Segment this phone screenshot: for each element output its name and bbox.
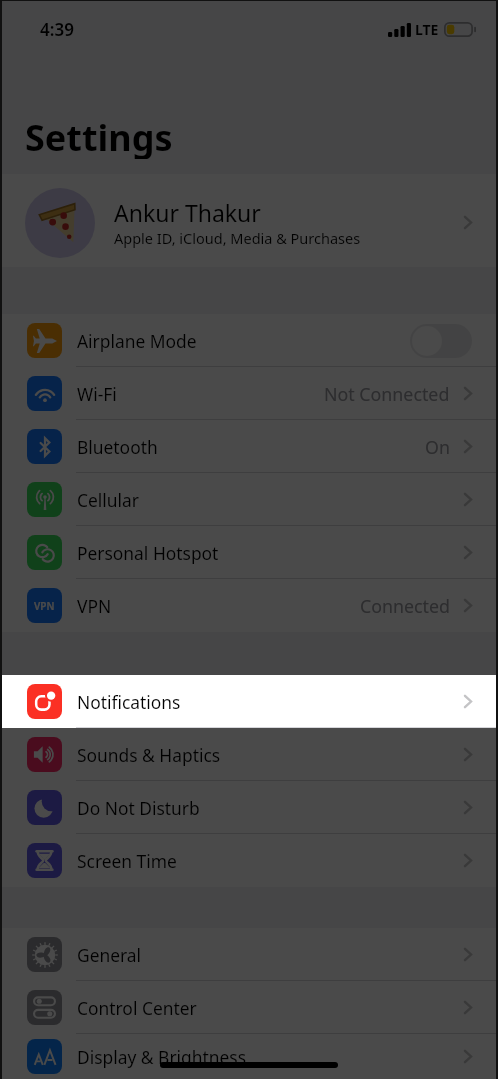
staticText: General	[77, 943, 464, 967]
staticText: LTE	[415, 20, 439, 39]
staticText: Not Connected	[324, 382, 450, 406]
staticText: Connected	[360, 594, 450, 618]
staticText: Control Center	[77, 996, 464, 1020]
staticText: On	[425, 435, 450, 459]
button[interactable]: Notifications	[2, 675, 496, 728]
button[interactable]: Personal Hotspot	[2, 526, 496, 579]
button[interactable]: Wi-Fi	[2, 367, 496, 420]
staticText: VPN	[77, 594, 360, 618]
button[interactable]: General	[2, 928, 496, 981]
staticText: Ankur Thakur	[114, 197, 261, 228]
staticText: Sounds & Haptics	[77, 743, 464, 767]
button[interactable]: Bluetooth	[2, 420, 496, 473]
button[interactable]: Do Not Disturb	[2, 781, 496, 834]
button[interactable]: Ankur Thakur	[2, 174, 496, 267]
button[interactable]: Sounds & Haptics	[2, 728, 496, 781]
button[interactable]: Display & Brightness	[2, 1034, 496, 1079]
staticText: Personal Hotspot	[77, 541, 464, 565]
staticText: Bluetooth	[77, 435, 425, 459]
button[interactable]: Control Center	[2, 981, 496, 1034]
staticText: Cellular	[77, 488, 464, 512]
button[interactable]: Airplane Mode	[2, 314, 496, 367]
staticText: Do Not Disturb	[77, 796, 464, 820]
button[interactable]: Cellular	[2, 473, 496, 526]
staticText: Wi-Fi	[77, 382, 324, 406]
staticText: Notifications	[77, 690, 464, 714]
staticText: Screen Time	[77, 849, 464, 873]
staticText: Settings	[25, 113, 173, 159]
staticText: VPN	[34, 599, 55, 613]
button[interactable]: Screen Time	[2, 834, 496, 887]
staticText: Apple ID, iCloud, Media & Purchases	[114, 228, 361, 248]
staticText: Airplane Mode	[77, 329, 410, 353]
button[interactable]: VPN	[2, 579, 496, 632]
staticText: Display & Brightness	[77, 1045, 464, 1069]
staticText: 4:39	[40, 18, 74, 41]
